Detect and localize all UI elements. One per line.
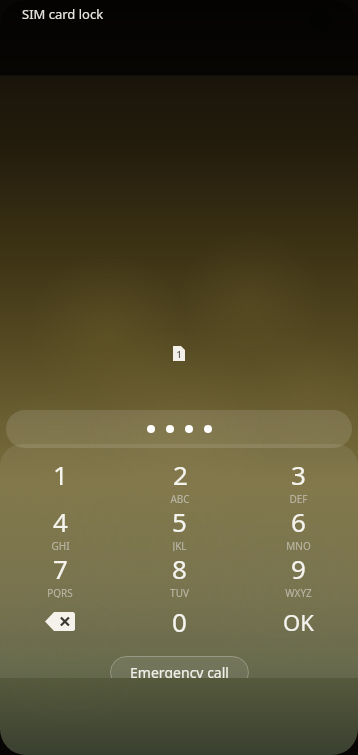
button[interactable] — [6, 410, 352, 448]
staticText: 9 — [291, 551, 306, 586]
button[interactable]: 6 — [239, 504, 358, 551]
button[interactable]: 0 — [120, 598, 239, 645]
staticText: 1 — [176, 348, 182, 360]
staticText: Emergency call — [130, 663, 229, 678]
button[interactable]: 7 — [0, 551, 120, 598]
button[interactable]: Emergency call — [110, 656, 249, 678]
staticText: 6 — [291, 504, 306, 539]
button[interactable]: 3 — [239, 457, 358, 504]
staticText: ABC — [170, 492, 190, 504]
button[interactable]: 1 — [0, 457, 120, 504]
staticText: 1 — [53, 457, 68, 492]
staticText: 0 — [172, 604, 187, 639]
staticText: MNO — [286, 539, 311, 551]
staticText: 7 — [53, 551, 68, 586]
staticText: 8 — [172, 551, 187, 586]
staticText: GHI — [51, 539, 70, 551]
button[interactable]: 4 — [0, 504, 120, 551]
staticText: JKL — [172, 539, 187, 551]
staticText: 3 — [291, 457, 306, 492]
staticText: SIM card lock — [22, 5, 104, 23]
staticText: 2 — [173, 457, 188, 492]
staticText: 4 — [53, 504, 68, 539]
staticText: TUV — [170, 586, 189, 598]
staticText: WXYZ — [285, 586, 312, 598]
staticText: PQRS — [47, 586, 73, 598]
button[interactable]: 8 — [120, 551, 239, 598]
button[interactable]: 2 — [120, 457, 239, 504]
button[interactable]: Delete — [0, 598, 120, 645]
staticText: DEF — [289, 492, 308, 504]
staticText: OK — [283, 607, 314, 637]
button[interactable]: OK — [239, 598, 358, 645]
button[interactable]: 9 — [239, 551, 358, 598]
staticText: 5 — [172, 504, 187, 539]
button[interactable]: 5 — [120, 504, 239, 551]
